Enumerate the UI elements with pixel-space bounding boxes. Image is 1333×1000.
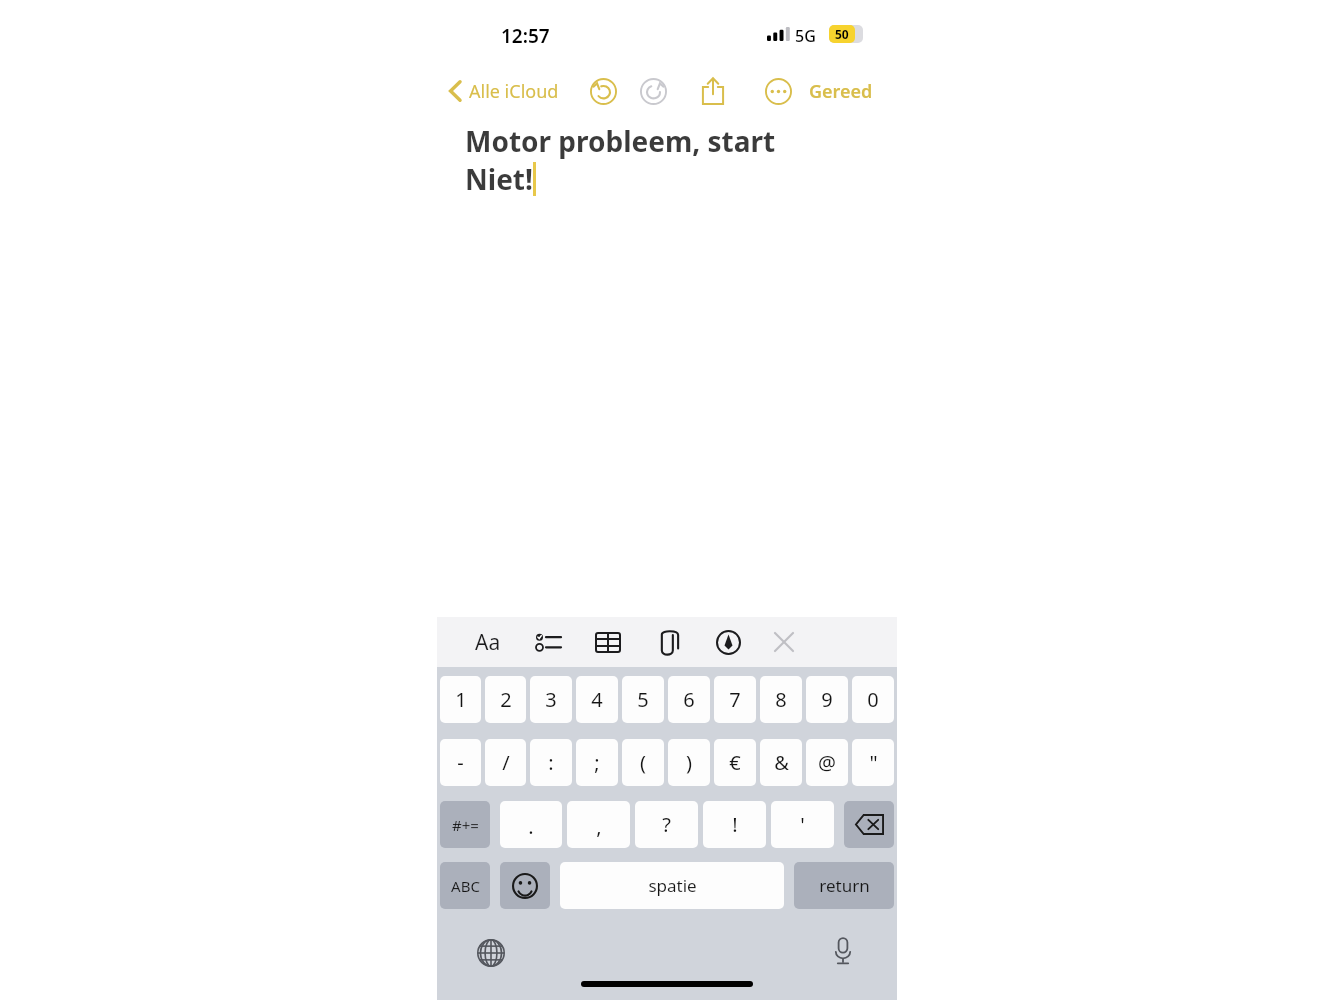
- button[interactable]: return: [794, 862, 894, 909]
- button[interactable]: Share: [692, 70, 734, 112]
- staticText: ": [869, 749, 878, 776]
- button[interactable]: ;: [576, 739, 618, 786]
- button[interactable]: Redo: [632, 70, 674, 112]
- button[interactable]: Switch keyboard: [471, 933, 511, 973]
- staticText: Aa: [475, 628, 501, 657]
- button[interactable]: 1: [440, 676, 481, 723]
- button[interactable]: Alle iCloud: [445, 70, 563, 112]
- staticText: Motor probleem, start: [465, 122, 776, 160]
- staticText: 12:57: [501, 23, 550, 49]
- staticText: -: [457, 749, 464, 776]
- staticText: .: [528, 813, 534, 840]
- button[interactable]: -: [440, 739, 481, 786]
- button[interactable]: 3: [530, 676, 572, 723]
- staticText: 9: [821, 686, 833, 713]
- staticText: 0: [867, 686, 879, 713]
- button[interactable]: Markup: [711, 625, 745, 659]
- button[interactable]: 9: [806, 676, 848, 723]
- staticText: ': [800, 811, 805, 838]
- staticText: :: [548, 749, 554, 776]
- button[interactable]: More options: [757, 70, 799, 112]
- staticText: 5: [637, 686, 649, 713]
- staticText: ): [686, 749, 692, 776]
- staticText: Niet!: [465, 160, 533, 198]
- button[interactable]: /: [485, 739, 526, 786]
- button[interactable]: ABC: [440, 862, 490, 909]
- button[interactable]: 0: [852, 676, 894, 723]
- button[interactable]: Checklist: [531, 625, 565, 659]
- button[interactable]: Close keyboard: [767, 625, 801, 659]
- button[interactable]: ): [668, 739, 710, 786]
- staticText: 3: [545, 686, 557, 713]
- button[interactable]: Attach: [651, 625, 685, 659]
- staticText: @: [818, 749, 836, 776]
- button[interactable]: ": [852, 739, 894, 786]
- button[interactable]: ': [771, 801, 834, 848]
- staticText: !: [732, 811, 738, 838]
- button[interactable]: Table: [591, 625, 625, 659]
- button[interactable]: 8: [760, 676, 802, 723]
- button[interactable]: Backspace: [844, 801, 894, 848]
- button[interactable]: #+=: [440, 801, 490, 848]
- button[interactable]: €: [714, 739, 756, 786]
- staticText: (: [640, 749, 646, 776]
- button[interactable]: .: [500, 801, 562, 848]
- button[interactable]: ,: [567, 801, 630, 848]
- staticText: 1: [455, 686, 467, 713]
- staticText: €: [729, 749, 741, 776]
- staticText: ?: [662, 811, 671, 838]
- button[interactable]: (: [622, 739, 664, 786]
- button[interactable]: Emoji: [500, 862, 550, 909]
- staticText: ABC: [451, 876, 480, 896]
- button[interactable]: 6: [668, 676, 710, 723]
- staticText: /: [502, 749, 510, 776]
- staticText: return: [819, 874, 870, 897]
- button[interactable]: Undo: [582, 70, 624, 112]
- staticText: 8: [775, 686, 787, 713]
- staticText: ,: [596, 813, 602, 840]
- staticText: 5G: [795, 25, 816, 47]
- staticText: 6: [683, 686, 695, 713]
- staticText: #+=: [452, 815, 479, 835]
- button[interactable]: 5: [622, 676, 664, 723]
- button[interactable]: spatie: [560, 862, 784, 909]
- staticText: 7: [729, 686, 741, 713]
- button[interactable]: :: [530, 739, 572, 786]
- button[interactable]: 2: [485, 676, 526, 723]
- staticText: 2: [500, 686, 512, 713]
- staticText: 50: [835, 26, 849, 42]
- staticText: &: [774, 749, 789, 776]
- button[interactable]: @: [806, 739, 848, 786]
- button[interactable]: 7: [714, 676, 756, 723]
- button[interactable]: Gereed: [805, 70, 877, 112]
- button[interactable]: 4: [576, 676, 618, 723]
- staticText: spatie: [648, 874, 697, 897]
- button[interactable]: ?: [635, 801, 698, 848]
- button[interactable]: !: [703, 801, 766, 848]
- staticText: Gereed: [809, 79, 873, 104]
- staticText: 4: [591, 686, 603, 713]
- button[interactable]: &: [760, 739, 802, 786]
- button[interactable]: Text format: [471, 625, 505, 659]
- staticText: ;: [594, 749, 600, 776]
- button[interactable]: Dictation: [823, 931, 863, 971]
- staticText: Alle iCloud: [469, 79, 559, 104]
